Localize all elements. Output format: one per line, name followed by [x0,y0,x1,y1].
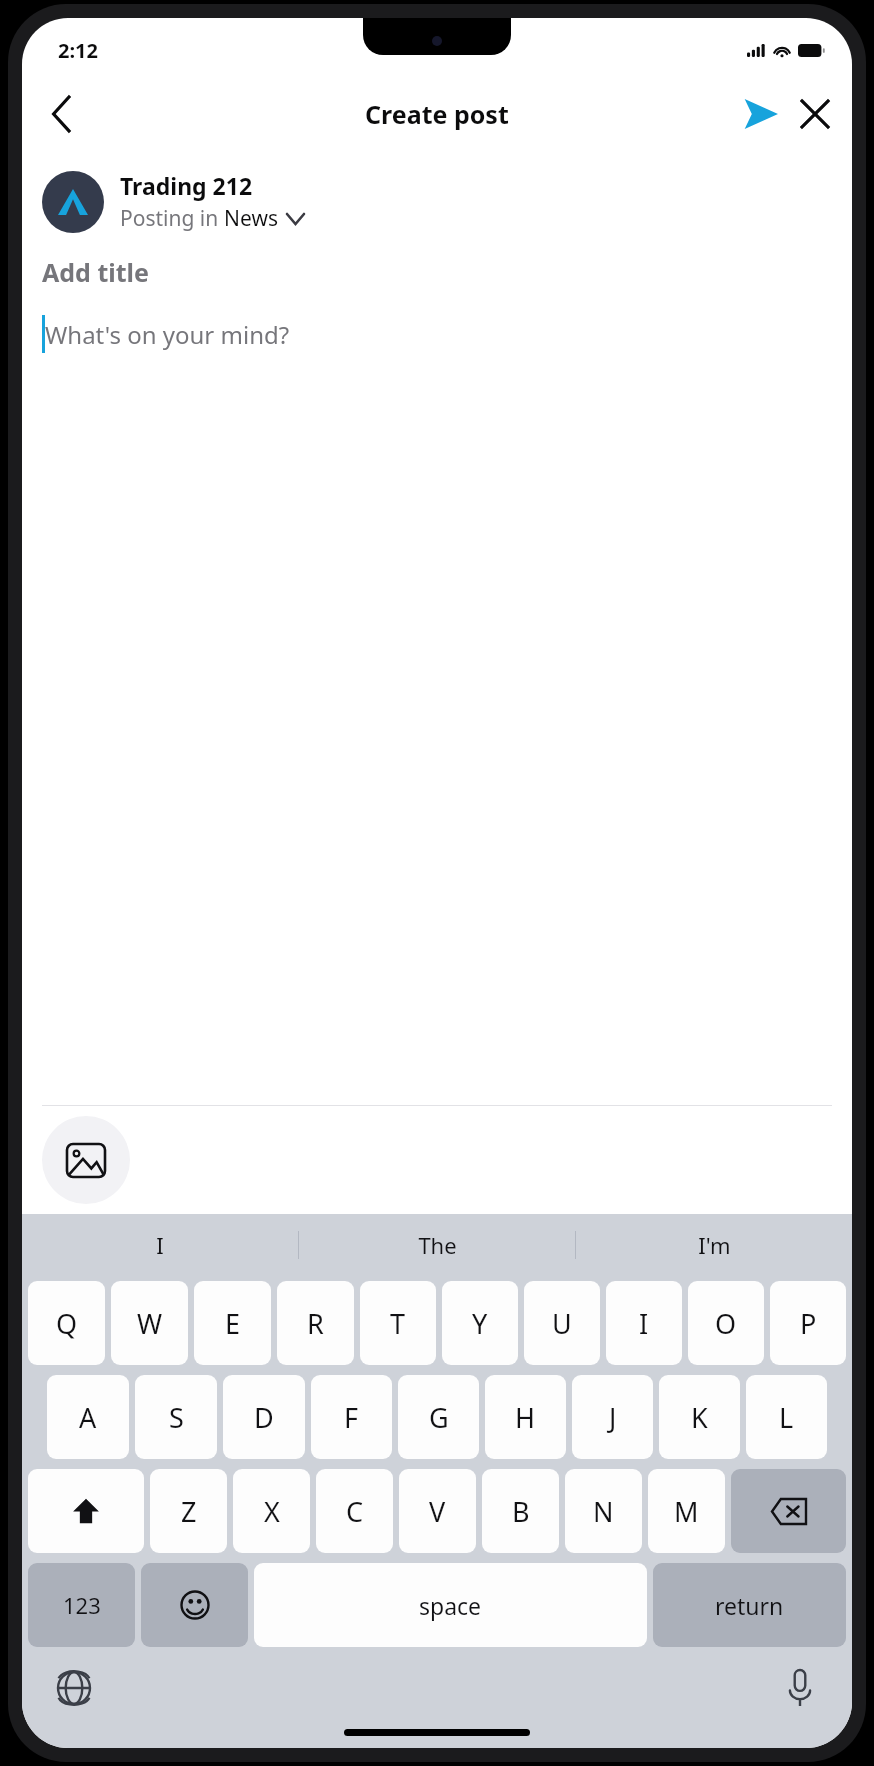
staticText: Y [472,1305,488,1342]
staticText: F [344,1399,359,1436]
button[interactable]: L [746,1375,827,1459]
staticText: 2:12 [58,37,98,64]
button[interactable]: Q [28,1281,105,1365]
staticText: Z [181,1493,197,1530]
staticText: X [264,1493,280,1530]
staticText: U [552,1305,572,1342]
staticText: I [156,1230,164,1260]
button[interactable]: S [135,1375,217,1459]
button[interactable]: Shift [28,1469,144,1553]
button[interactable]: B [482,1469,559,1553]
button[interactable]: Add image [42,1116,130,1204]
button[interactable]: M [648,1469,725,1553]
button[interactable]: Trading 212 [42,170,852,233]
button[interactable]: Close [788,87,842,141]
button[interactable]: T [360,1281,436,1365]
button[interactable]: I [606,1281,682,1365]
button[interactable]: W [111,1281,188,1365]
staticText: W [137,1305,163,1342]
staticText: I [639,1305,649,1342]
staticText: J [609,1399,617,1436]
button[interactable]: N [565,1469,642,1553]
button[interactable]: Send [734,87,788,141]
staticText: Posting in [120,204,224,233]
staticText: S [169,1399,184,1436]
staticText: H [515,1399,536,1436]
staticText: What's on your mind? [45,318,290,351]
button[interactable]: Backspace [731,1469,846,1553]
staticText: 123 [63,1590,101,1620]
button[interactable]: I'm [576,1214,852,1276]
button[interactable]: Change keyboard [48,1662,100,1714]
staticText: C [346,1493,364,1530]
button[interactable]: U [524,1281,600,1365]
staticText: E [225,1305,241,1342]
button[interactable]: V [399,1469,476,1553]
staticText: T [390,1305,406,1342]
button[interactable]: R [277,1281,354,1365]
button[interactable]: X [233,1469,310,1553]
button[interactable]: O [688,1281,764,1365]
button[interactable]: Dictate [774,1662,826,1714]
button[interactable]: C [316,1469,393,1553]
button[interactable]: P [770,1281,846,1365]
button[interactable]: Z [150,1469,227,1553]
button[interactable]: D [223,1375,305,1459]
staticText: Add title [42,255,149,289]
staticText: I'm [698,1230,731,1260]
staticText: return [715,1590,784,1621]
staticText: Q [56,1305,78,1342]
staticText: A [79,1399,97,1436]
staticText: D [254,1399,274,1436]
staticText: M [674,1493,699,1530]
staticText: P [800,1305,817,1342]
staticText: Trading 212 [120,170,253,201]
staticText: B [512,1493,530,1530]
button[interactable]: J [572,1375,653,1459]
button[interactable]: E [194,1281,271,1365]
button[interactable]: Emoji [141,1563,248,1647]
staticText: The [418,1230,457,1260]
staticText: K [691,1399,708,1436]
staticText: News [224,204,278,233]
staticText: G [429,1399,449,1436]
button[interactable]: K [659,1375,740,1459]
button[interactable]: F [311,1375,392,1459]
button[interactable]: 123 [28,1563,135,1647]
staticText: space [419,1590,482,1621]
staticText: N [593,1493,614,1530]
button[interactable]: return [653,1563,846,1647]
button[interactable]: The [299,1214,575,1276]
staticText: O [715,1305,737,1342]
button[interactable]: G [398,1375,479,1459]
staticText: R [307,1305,324,1342]
staticText: V [429,1493,446,1530]
button[interactable]: Back [36,88,88,140]
staticText: Create post [365,97,509,131]
button[interactable]: space [254,1563,647,1647]
button[interactable]: A [47,1375,129,1459]
staticText: L [779,1399,794,1436]
button[interactable]: Y [442,1281,518,1365]
button[interactable]: H [485,1375,566,1459]
button[interactable]: I [22,1214,298,1276]
